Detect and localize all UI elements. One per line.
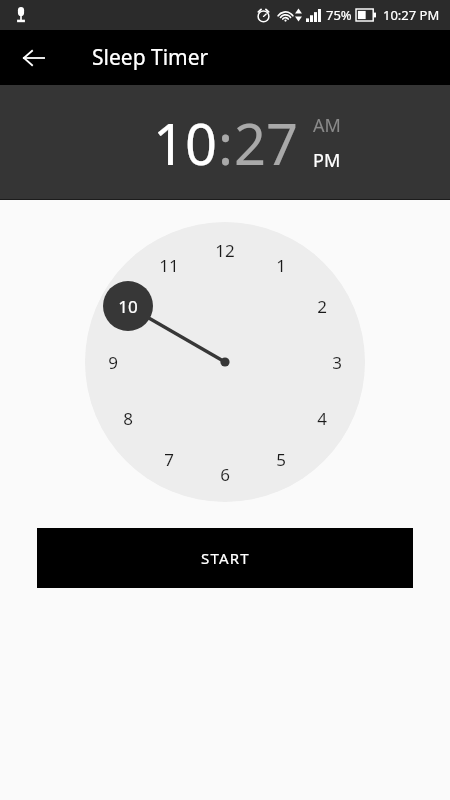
button[interactable]: 6 xyxy=(203,452,247,496)
staticText: 8 xyxy=(123,407,133,430)
staticText: 75% xyxy=(326,6,352,24)
staticText: 11 xyxy=(159,254,179,277)
button[interactable]: 10 xyxy=(106,284,150,328)
button[interactable]: 5 xyxy=(259,437,303,481)
button[interactable]: 12 xyxy=(203,228,247,272)
staticText: : xyxy=(218,105,234,181)
button[interactable]: 7 xyxy=(147,437,191,481)
button[interactable]: 8 xyxy=(106,396,150,440)
staticText: 7 xyxy=(164,448,174,471)
staticText: 2 xyxy=(317,295,327,318)
button[interactable]: 10 xyxy=(153,105,218,181)
button[interactable]: 4 xyxy=(300,396,344,440)
button[interactable]: 3 xyxy=(315,340,359,384)
staticText: 6 xyxy=(220,463,230,486)
staticText: 12 xyxy=(215,239,235,262)
button[interactable] xyxy=(85,222,365,502)
staticText: 1 xyxy=(276,254,286,277)
button[interactable]: 2 xyxy=(300,284,344,328)
staticText: 3 xyxy=(332,351,342,374)
staticText: 10 xyxy=(118,295,138,318)
staticText: 5 xyxy=(276,448,286,471)
staticText: Sleep Timer xyxy=(92,43,209,72)
button[interactable]: Back xyxy=(12,36,56,80)
button[interactable]: 9 xyxy=(91,340,135,384)
staticText: 4 xyxy=(317,407,327,430)
button[interactable]: START xyxy=(37,528,413,588)
button[interactable]: 11 xyxy=(147,243,191,287)
button[interactable]: 1 xyxy=(259,243,303,287)
staticText: START xyxy=(201,548,250,568)
button[interactable]: PM xyxy=(313,148,341,173)
staticText: 10:27 PM xyxy=(383,6,440,24)
button[interactable]: 27 xyxy=(234,105,299,181)
button[interactable]: AM xyxy=(313,113,341,138)
staticText: 9 xyxy=(108,351,118,374)
